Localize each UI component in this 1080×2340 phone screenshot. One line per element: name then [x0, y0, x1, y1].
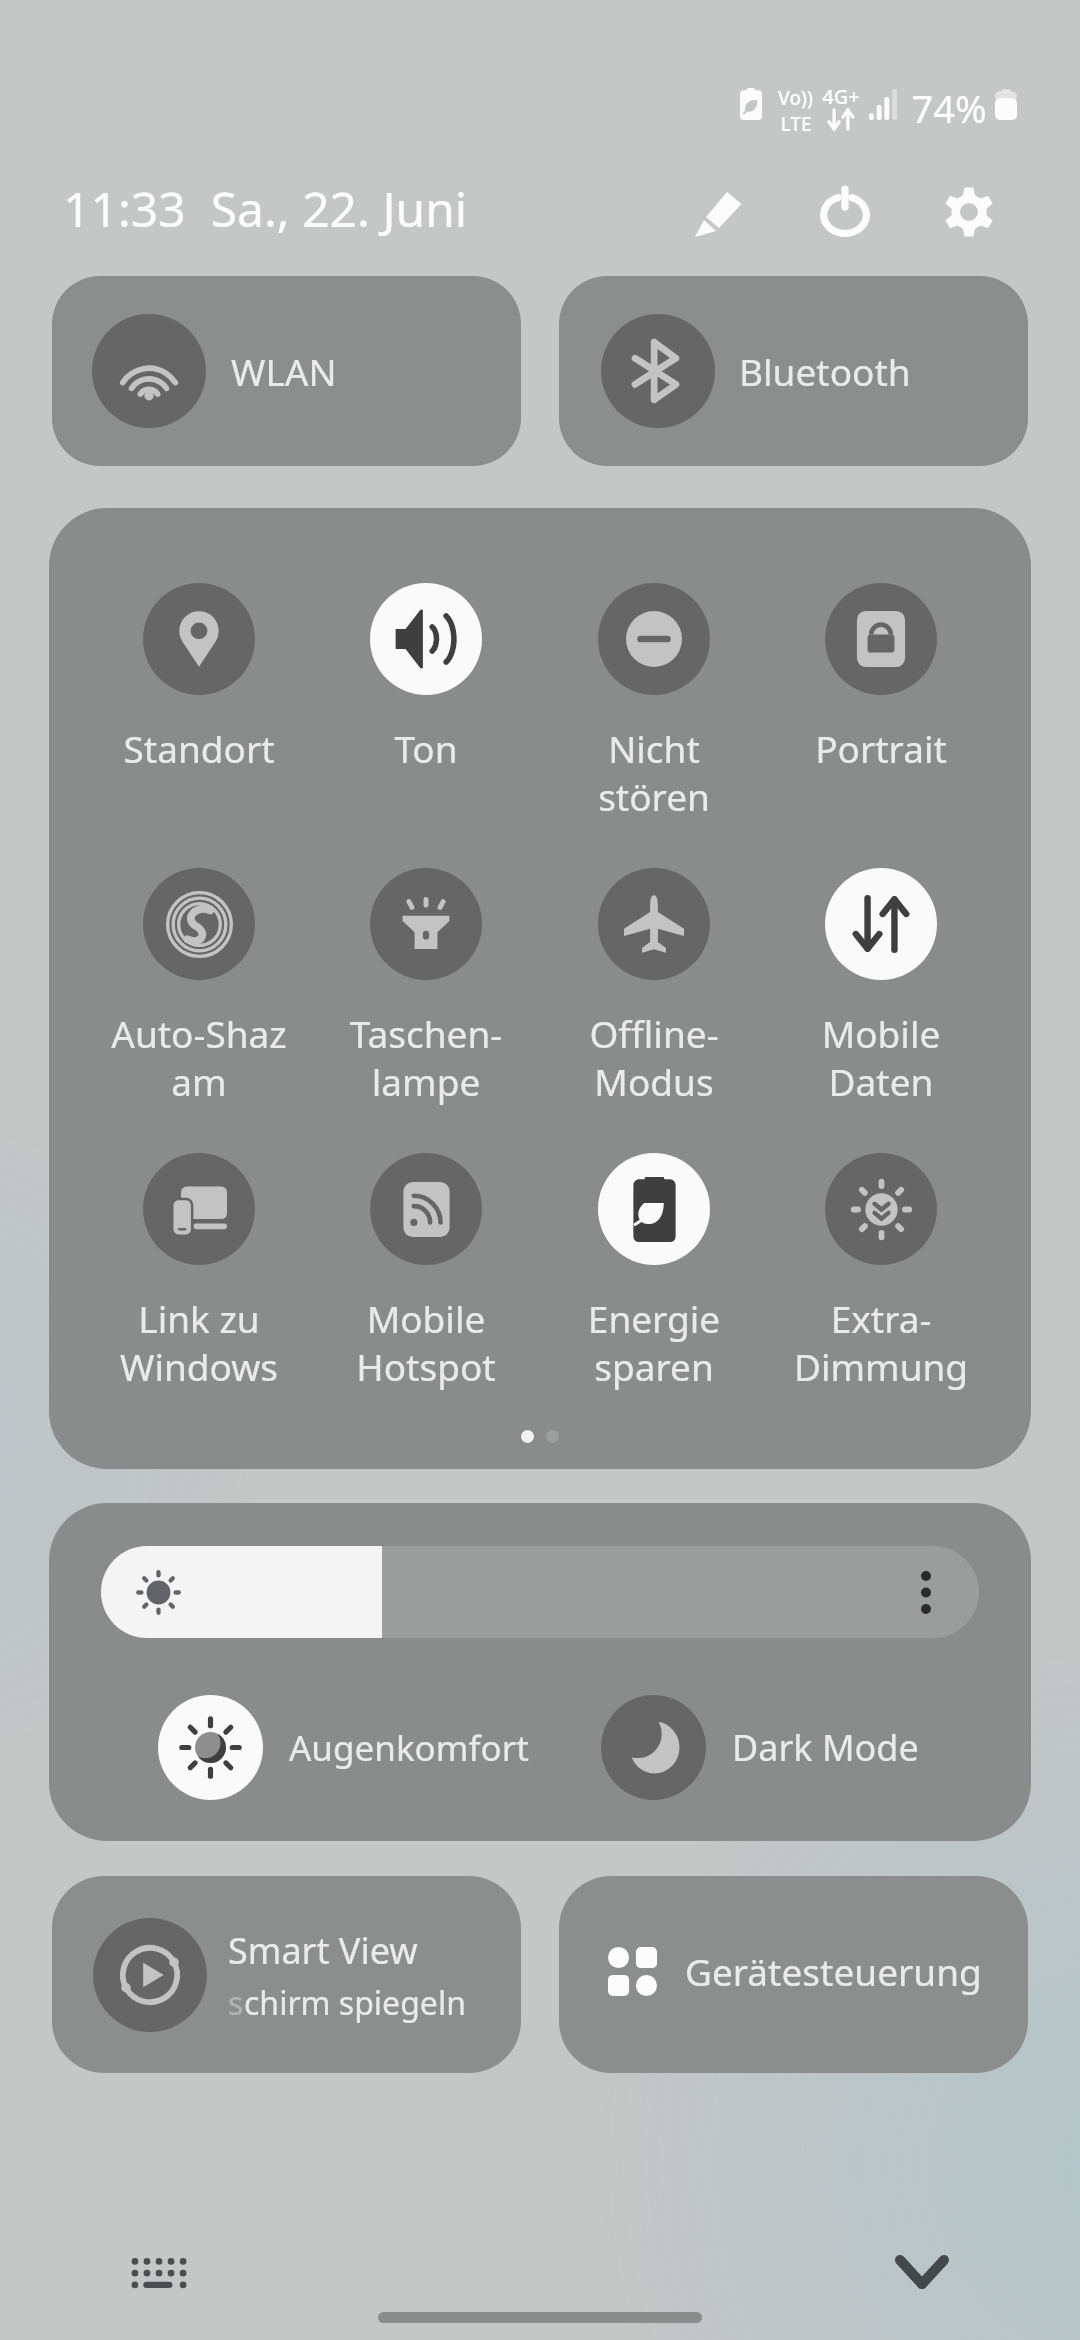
button[interactable]: Ausschalten [797, 164, 893, 260]
button[interactable]: Portrait [768, 583, 994, 773]
button[interactable]: Standort [86, 583, 312, 773]
staticText: WLAN [231, 346, 337, 396]
staticText: LTE [780, 111, 812, 137]
staticText: 4G+ [822, 83, 860, 110]
staticText: Ton [313, 723, 539, 773]
staticText: 74% [911, 82, 987, 134]
button[interactable]: Energie sparen [541, 1153, 767, 1392]
button[interactable]: Smart View [52, 1876, 521, 2073]
staticText: s [228, 1981, 244, 2025]
staticText: Nicht stören [541, 723, 767, 822]
staticText: Dark Mode [732, 1723, 919, 1772]
button[interactable]: Link zu Windows [86, 1153, 312, 1392]
button[interactable]: Auto-Shaz am [86, 868, 312, 1107]
button[interactable]: Ton [313, 583, 539, 773]
button[interactable]: Offline- Modus [541, 868, 767, 1107]
staticText: Standort [86, 723, 312, 773]
staticText: Vo)) [778, 85, 813, 111]
staticText: Bluetooth [739, 346, 911, 396]
staticText: Auto-Shaz am [86, 1008, 312, 1107]
staticText: 11:33 Sa., 22. Juni [63, 176, 468, 241]
button[interactable]: Taschen- lampe [313, 868, 539, 1107]
button[interactable]: Nicht stören [541, 583, 767, 822]
staticText: Link zu Windows [86, 1293, 312, 1392]
staticText: Extra- Dimmung [768, 1293, 994, 1392]
staticText: Taschen- lampe [313, 1008, 539, 1107]
button[interactable]: Mobile Hotspot [313, 1153, 539, 1392]
staticText: chirm spiegeln [244, 1981, 466, 2025]
staticText: Augenkomfort [289, 1724, 529, 1772]
button[interactable]: Schließen [874, 2224, 970, 2320]
button[interactable]: WLAN [52, 276, 521, 466]
staticText: Energie sparen [541, 1293, 767, 1392]
button[interactable]: Gerätesteuerung [559, 1876, 1028, 2073]
staticText: Mobile Daten [768, 1008, 994, 1107]
button[interactable]: Augenkomfort [158, 1695, 529, 1800]
button[interactable]: Mobile Daten [768, 868, 994, 1107]
button[interactable]: Tastatur [111, 2225, 207, 2321]
button[interactable]: Einstellungen [921, 164, 1017, 260]
button[interactable]: Bluetooth [559, 276, 1028, 466]
staticText: Portrait [768, 723, 994, 773]
button[interactable]: Extra- Dimmung [768, 1153, 994, 1392]
button[interactable]: Bearbeiten [671, 164, 767, 260]
staticText: Gerätesteuerung [685, 1946, 982, 1996]
staticText: Mobile Hotspot [313, 1293, 539, 1392]
staticText: Offline- Modus [541, 1008, 767, 1107]
staticText: Smart View [228, 1926, 418, 1975]
button[interactable] [101, 1546, 979, 1638]
button[interactable]: Dark Mode [601, 1695, 919, 1800]
